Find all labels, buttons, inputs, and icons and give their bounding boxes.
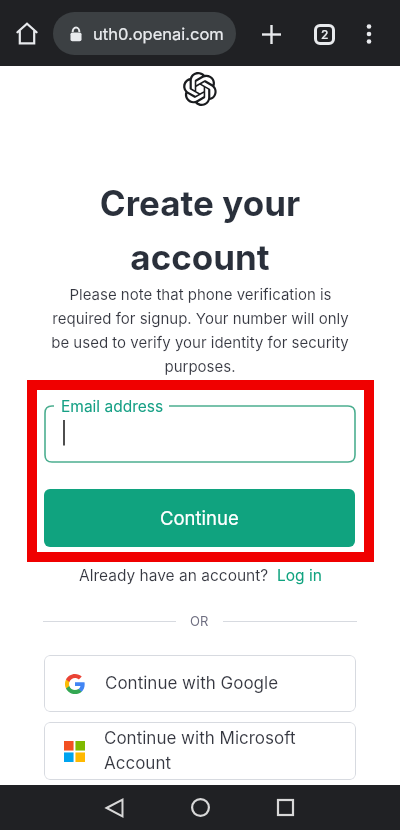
staticText: Continue with Microsoft xyxy=(104,728,296,749)
button[interactable]: Tabs xyxy=(303,13,345,55)
button[interactable]: Continue xyxy=(44,489,355,547)
staticText: Continue with Google xyxy=(105,673,279,694)
button[interactable]: Home xyxy=(5,12,48,55)
button[interactable]: Back xyxy=(90,786,138,829)
staticText: Email address xyxy=(61,397,164,416)
staticText: required for signup. Your number will on… xyxy=(52,309,349,327)
button[interactable]: Recents xyxy=(261,786,309,829)
button[interactable]: Home xyxy=(176,786,224,829)
staticText: Account xyxy=(104,753,172,774)
button[interactable]: Continue with Google xyxy=(44,655,356,712)
staticText: Already have an account? xyxy=(79,566,269,585)
staticText: Log in xyxy=(277,566,322,585)
button[interactable]: uth0.openai.com xyxy=(53,12,236,55)
staticText: uth0.openai.com xyxy=(93,24,224,44)
staticText: be used to verify your identity for secu… xyxy=(51,333,349,351)
staticText: 2 xyxy=(321,27,329,42)
staticText: Create your account xyxy=(60,182,340,279)
staticText: OR xyxy=(190,613,209,629)
staticText: Please note that phone verification is xyxy=(69,285,332,303)
button[interactable]: Log in xyxy=(277,566,322,585)
staticText: purposes. xyxy=(164,357,236,375)
button[interactable]: Continue with Microsoft xyxy=(44,722,356,780)
staticText: Continue xyxy=(160,507,239,529)
button[interactable]: More options xyxy=(348,13,390,55)
button[interactable]: New tab xyxy=(250,13,292,55)
